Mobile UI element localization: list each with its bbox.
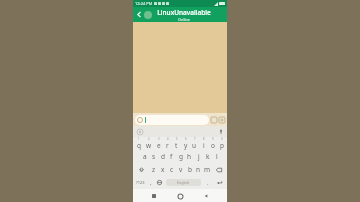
staticText: h xyxy=(187,152,192,161)
button[interactable]: Emoji xyxy=(135,115,209,125)
button[interactable]: d xyxy=(158,150,167,163)
other: Emoji xyxy=(137,117,143,123)
staticText: Online xyxy=(178,17,190,22)
button[interactable]: LinuxUnavailable xyxy=(152,8,215,22)
staticText: n xyxy=(196,165,201,174)
button[interactable]: 4 xyxy=(163,137,172,150)
staticText: 6 xyxy=(185,137,187,141)
button[interactable]: l xyxy=(212,150,221,163)
staticText: z xyxy=(152,165,156,174)
button[interactable]: 9 xyxy=(208,137,217,150)
staticText: 7 xyxy=(194,137,196,141)
button[interactable]: . xyxy=(203,176,212,189)
staticText: x xyxy=(161,165,165,174)
staticText: 0 xyxy=(221,137,223,141)
staticText: m xyxy=(204,165,211,174)
staticText: 1 xyxy=(138,137,140,141)
button[interactable]: Voice input xyxy=(218,129,224,135)
staticText: 3 xyxy=(158,137,160,141)
button[interactable]: z xyxy=(149,163,158,176)
staticText: English xyxy=(177,180,190,185)
staticText: i xyxy=(203,141,205,150)
button[interactable]: j xyxy=(194,150,203,163)
button[interactable]: 6 xyxy=(181,137,190,150)
button[interactable]: Backspace xyxy=(212,163,226,176)
staticText: . xyxy=(207,179,209,187)
button[interactable]: 5 xyxy=(172,137,181,150)
button[interactable]: 3 xyxy=(154,137,163,150)
button[interactable]: 2 xyxy=(144,137,154,150)
staticText: , xyxy=(150,179,152,187)
staticText: s xyxy=(152,152,156,161)
staticText: 4 xyxy=(167,137,169,141)
staticText: 5 xyxy=(176,137,178,141)
button[interactable]: g xyxy=(176,150,185,163)
staticText: a xyxy=(143,152,147,161)
staticText: 8 xyxy=(203,137,205,141)
button[interactable]: Back xyxy=(135,10,144,19)
button[interactable]: , xyxy=(147,176,155,189)
button[interactable]: Shift xyxy=(134,163,149,176)
button[interactable]: f xyxy=(167,150,176,163)
button[interactable]: h xyxy=(185,150,194,163)
button[interactable]: Expand toolbar xyxy=(136,128,143,135)
button[interactable]: n xyxy=(194,163,203,176)
button[interactable]: 1 xyxy=(134,137,144,150)
staticText: LinuxUnavailable xyxy=(157,8,211,17)
button[interactable]: English xyxy=(166,179,201,186)
staticText: q xyxy=(137,141,141,150)
staticText: r xyxy=(166,141,169,150)
button[interactable]: x xyxy=(158,163,167,176)
staticText: l xyxy=(216,152,218,161)
staticText: g xyxy=(179,152,183,161)
button[interactable]: v xyxy=(176,163,185,176)
button[interactable]: m xyxy=(203,163,212,176)
staticText: v xyxy=(179,165,183,174)
button[interactable]: ?123 xyxy=(134,176,147,189)
button[interactable]: Attach xyxy=(219,117,225,123)
staticText: 9 xyxy=(212,137,214,141)
button[interactable]: a xyxy=(140,150,149,163)
button[interactable]: Back xyxy=(201,191,211,201)
button[interactable]: 7 xyxy=(190,137,199,150)
staticText: f xyxy=(170,152,173,161)
staticText: o xyxy=(211,141,215,150)
button[interactable]: c xyxy=(167,163,176,176)
button[interactable]: k xyxy=(203,150,212,163)
staticText: 12:24 PM xyxy=(135,1,153,6)
button[interactable]: 0 xyxy=(217,137,226,150)
button[interactable]: Enter xyxy=(212,176,226,189)
staticText: j xyxy=(198,152,200,161)
staticText: k xyxy=(206,152,210,161)
staticText: p xyxy=(220,141,224,150)
button[interactable]: Change language xyxy=(155,176,164,189)
staticText: b xyxy=(188,165,192,174)
staticText: ?123 xyxy=(136,180,145,185)
staticText: c xyxy=(170,165,174,174)
staticText: 2 xyxy=(148,137,150,141)
staticText: y xyxy=(184,141,188,150)
button[interactable]: Sticker xyxy=(211,117,217,123)
button[interactable]: Home xyxy=(175,191,185,201)
button[interactable]: Recents xyxy=(149,191,159,201)
button[interactable]: 8 xyxy=(199,137,208,150)
button[interactable]: s xyxy=(149,150,158,163)
staticText: d xyxy=(161,152,165,161)
staticText: e xyxy=(157,141,161,150)
button[interactable]: b xyxy=(185,163,194,176)
staticText: t xyxy=(175,141,178,150)
button[interactable]: Contact avatar xyxy=(144,11,152,19)
staticText: u xyxy=(192,141,197,150)
staticText: w xyxy=(146,141,152,150)
